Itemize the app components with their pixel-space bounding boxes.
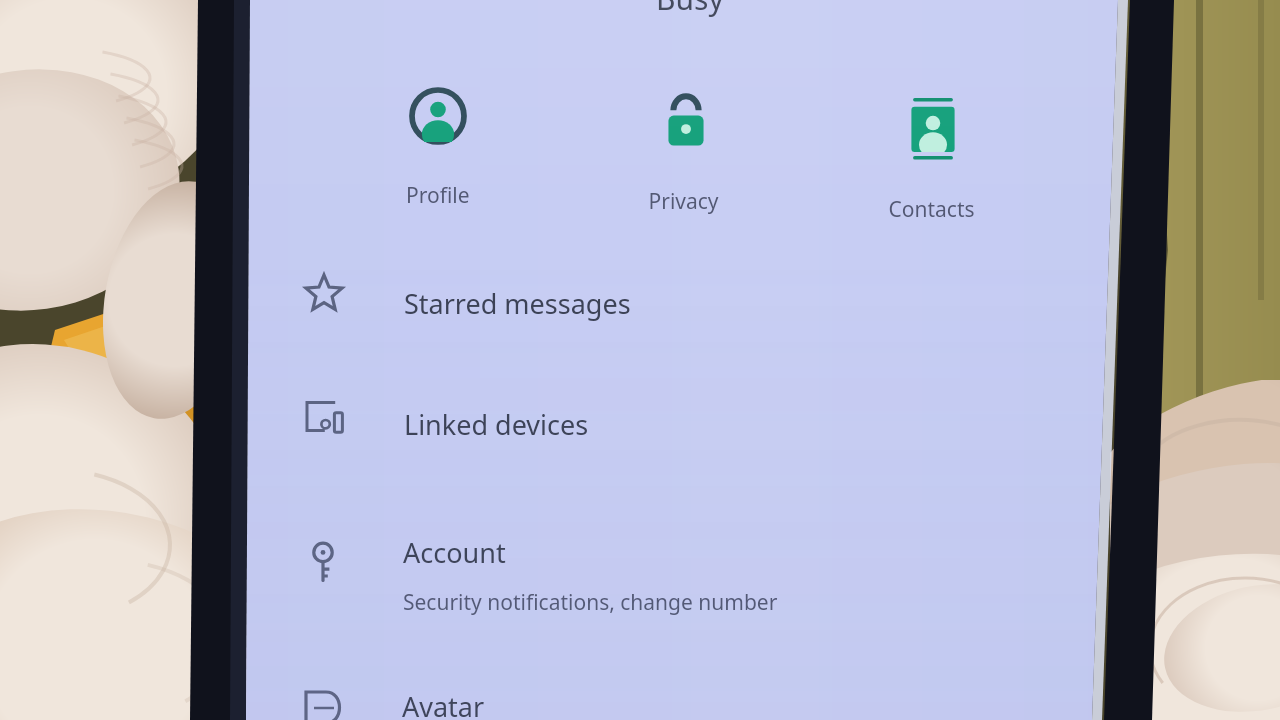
button[interactable]: WhatsApp settings on phone held in hand (0, 0, 1280, 720)
